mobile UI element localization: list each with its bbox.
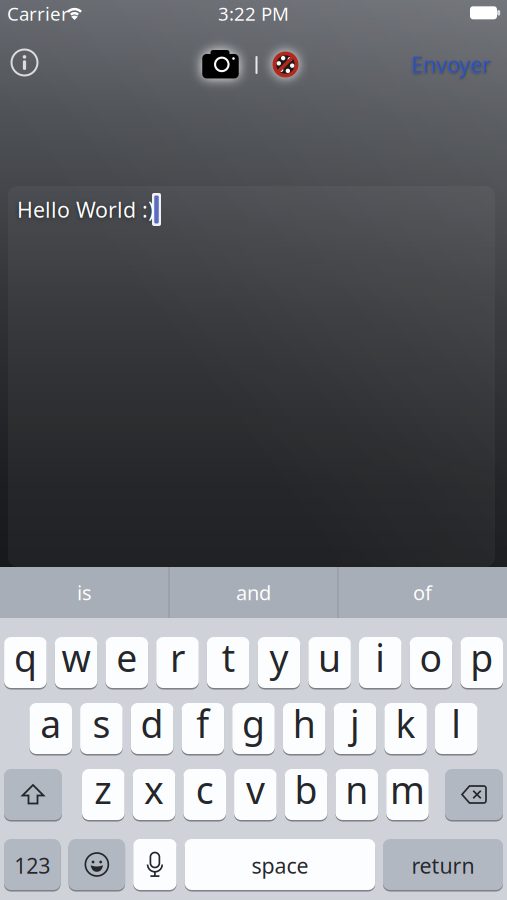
button[interactable]: e <box>105 636 148 689</box>
button[interactable]: Envoyer <box>411 50 491 79</box>
button[interactable]: space <box>185 838 375 891</box>
staticText: and <box>236 579 271 606</box>
button[interactable]: s <box>80 702 123 755</box>
staticText: q <box>14 633 37 682</box>
button[interactable]: j <box>334 702 376 755</box>
staticText: of <box>413 579 432 606</box>
button[interactable]: return <box>383 838 503 891</box>
staticText: x <box>144 765 164 814</box>
button[interactable]: c <box>183 768 226 821</box>
button[interactable]: Take photo <box>198 47 242 83</box>
button[interactable]: m <box>386 768 429 821</box>
button[interactable]: u <box>308 636 351 689</box>
staticText: j <box>350 699 360 748</box>
staticText: Envoyer <box>411 50 491 79</box>
button[interactable]: l <box>435 702 478 755</box>
staticText: a <box>40 699 61 748</box>
button[interactable]: 123 <box>4 838 60 891</box>
button[interactable]: Emoji <box>69 838 125 891</box>
staticText: r <box>170 633 185 682</box>
button[interactable]: Delete <box>445 768 503 821</box>
staticText: v <box>246 765 265 814</box>
staticText: m <box>390 765 425 814</box>
button[interactable]: r <box>156 636 199 689</box>
staticText: z <box>94 765 112 814</box>
staticText: l <box>451 699 461 748</box>
staticText: Carrier <box>7 1 69 26</box>
button[interactable]: and <box>170 567 337 618</box>
button[interactable]: z <box>82 768 125 821</box>
staticText: d <box>141 699 164 748</box>
staticText: u <box>318 633 341 682</box>
staticText: p <box>470 633 493 682</box>
button[interactable]: y <box>258 636 300 689</box>
staticText: 3:22 PM <box>218 1 289 26</box>
staticText: k <box>396 699 416 748</box>
staticText: space <box>251 851 308 880</box>
staticText: s <box>92 699 110 748</box>
staticText: o <box>419 633 442 682</box>
staticText: h <box>293 699 316 748</box>
button[interactable]: x <box>133 768 175 821</box>
staticText: c <box>196 765 214 814</box>
staticText: w <box>62 633 91 682</box>
button[interactable]: Video disabled <box>272 51 299 78</box>
button[interactable]: b <box>285 768 327 821</box>
button[interactable]: of <box>339 567 506 618</box>
staticText: t <box>222 633 235 682</box>
button[interactable]: a <box>29 702 72 755</box>
button[interactable]: w <box>55 636 97 689</box>
button[interactable]: g <box>232 702 275 755</box>
button[interactable]: p <box>460 636 503 689</box>
button[interactable]: f <box>181 702 224 755</box>
button[interactable]: n <box>335 768 378 821</box>
button[interactable]: o <box>410 636 452 689</box>
staticText: b <box>295 765 318 814</box>
staticText: is <box>77 579 92 606</box>
button[interactable]: Info <box>10 48 38 76</box>
staticText: y <box>269 633 288 682</box>
staticText: 123 <box>14 851 50 880</box>
staticText: e <box>116 633 137 682</box>
staticText: f <box>196 699 209 748</box>
button[interactable]: Shift <box>4 768 62 821</box>
staticText: i <box>375 633 385 682</box>
button[interactable]: v <box>234 768 277 821</box>
staticText: g <box>242 699 265 748</box>
button[interactable]: h <box>283 702 325 755</box>
button[interactable]: q <box>4 636 47 689</box>
button[interactable]: i <box>359 636 402 689</box>
staticText: return <box>411 851 474 880</box>
staticText: n <box>345 765 368 814</box>
button[interactable]: is <box>1 567 168 618</box>
button[interactable]: k <box>384 702 427 755</box>
staticText: Hello World :) <box>17 195 154 224</box>
button[interactable]: d <box>131 702 173 755</box>
button[interactable]: Dictate <box>133 838 177 891</box>
button[interactable]: t <box>207 636 249 689</box>
